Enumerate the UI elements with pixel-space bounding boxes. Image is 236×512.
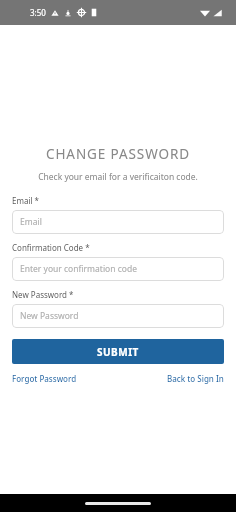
button[interactable]: Forgot Password — [12, 373, 77, 384]
other: Home gesture bar — [85, 502, 151, 505]
button[interactable]: Enter your confirmation code — [12, 257, 224, 281]
button[interactable]: Email — [12, 210, 224, 234]
staticText: 3:50 — [30, 7, 46, 18]
staticText: Email * — [12, 195, 40, 206]
staticText: Email — [20, 216, 42, 228]
staticText: New Password — [20, 310, 79, 322]
staticText: Forgot Password — [12, 373, 77, 384]
staticText: Enter your confirmation code — [20, 263, 137, 275]
button[interactable]: Back to Sign In — [167, 373, 224, 384]
staticText: Check your email for a verificaiton code… — [0, 171, 236, 183]
button[interactable]: SUBMIT — [12, 339, 224, 364]
staticText: Back to Sign In — [167, 373, 224, 384]
staticText: CHANGE PASSWORD — [0, 145, 236, 163]
staticText: Confirmation Code * — [12, 242, 90, 253]
button[interactable]: New Password — [12, 304, 224, 328]
staticText: New Password * — [12, 289, 74, 300]
staticText: SUBMIT — [97, 345, 139, 359]
